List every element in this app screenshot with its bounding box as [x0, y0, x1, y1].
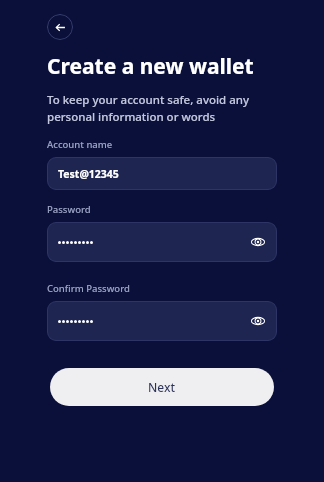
staticText: Test@12345 [58, 167, 119, 181]
button[interactable]: Test@12345 [47, 157, 277, 190]
button[interactable]: Show password [249, 312, 267, 330]
button[interactable]: Back [47, 14, 73, 40]
button[interactable]: Show password [249, 233, 267, 251]
button[interactable]: Next [50, 368, 274, 406]
staticText: To keep your account safe, avoid any per… [47, 92, 277, 124]
staticText: Account name [47, 138, 113, 151]
staticText: Next [148, 379, 176, 395]
button[interactable]: Show password [47, 222, 277, 262]
button[interactable]: Show password [47, 301, 277, 341]
staticText: Confirm Password [47, 282, 130, 295]
staticText: Create a new wallet [47, 52, 254, 81]
staticText: Password [47, 203, 91, 216]
